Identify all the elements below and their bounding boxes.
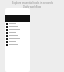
button[interactable] [5, 43, 30, 46]
button[interactable] [5, 25, 30, 28]
staticText: Explore essential tools in seconds [12, 1, 53, 5]
staticText: Daily workflow [23, 5, 41, 9]
button[interactable] [5, 37, 30, 40]
button[interactable] [5, 34, 30, 37]
button[interactable] [5, 40, 30, 43]
button[interactable] [5, 28, 30, 31]
button[interactable] [5, 22, 30, 25]
button[interactable] [5, 31, 30, 34]
